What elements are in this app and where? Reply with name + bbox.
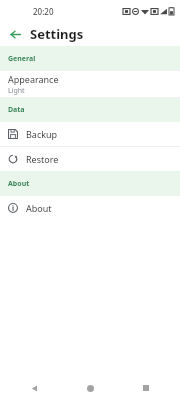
staticText: Light xyxy=(8,86,25,96)
staticText: About xyxy=(26,202,52,214)
staticText: Backup xyxy=(26,128,58,140)
button[interactable]: Restore xyxy=(0,147,180,171)
staticText: Restore xyxy=(26,153,59,165)
staticText: 20:20 xyxy=(33,6,54,17)
button[interactable]: Recent apps xyxy=(134,376,158,400)
staticText: About xyxy=(8,179,30,189)
staticText: Data xyxy=(8,105,25,115)
button[interactable]: Back xyxy=(22,376,46,400)
staticText: Settings xyxy=(30,25,84,43)
button[interactable]: Home xyxy=(78,376,102,400)
button[interactable]: Back xyxy=(4,23,26,45)
button[interactable]: About xyxy=(0,196,180,220)
button[interactable]: Backup xyxy=(0,122,180,146)
button[interactable]: Appearance xyxy=(0,71,180,97)
staticText: General xyxy=(8,54,36,64)
staticText: Appearance xyxy=(8,73,59,85)
